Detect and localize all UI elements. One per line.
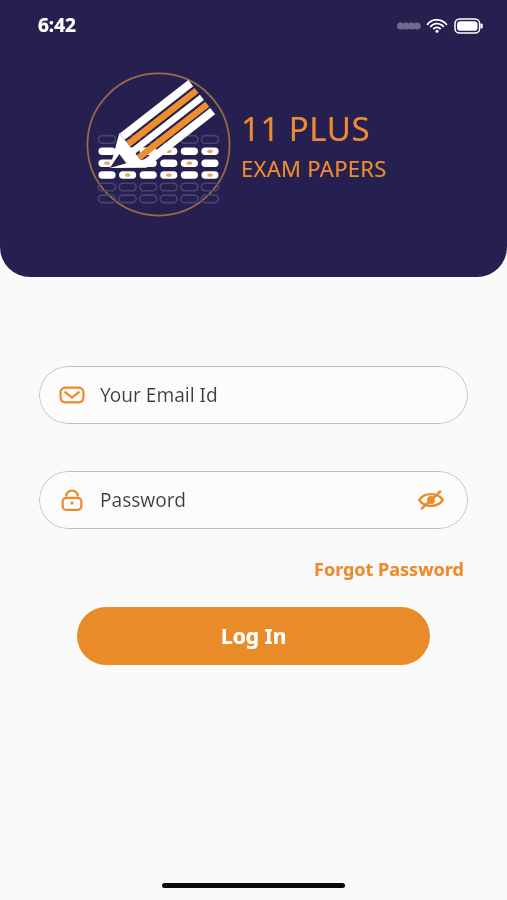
staticText: Password (100, 487, 186, 513)
button[interactable]: Forgot Password (310, 554, 468, 585)
button[interactable]: Your Email Id (39, 366, 468, 424)
button[interactable]: Password (39, 471, 468, 529)
staticText: 11 PLUS (241, 106, 370, 151)
staticText: Your Email Id (100, 382, 218, 408)
staticText: EXAM PAPERS (241, 153, 387, 183)
staticText: 6:42 (38, 12, 76, 38)
button[interactable]: Show password (414, 483, 448, 517)
staticText: Forgot Password (314, 557, 464, 582)
staticText: Log In (221, 622, 287, 651)
button[interactable]: Log In (77, 607, 430, 665)
